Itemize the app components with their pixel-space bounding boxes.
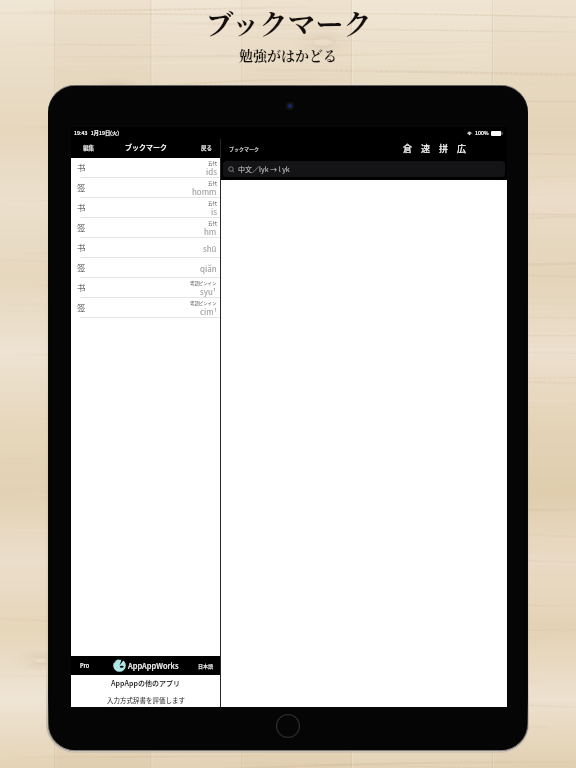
staticText: 书 [77, 241, 86, 253]
staticText: 速 [421, 142, 431, 155]
staticText: ブックマーク [125, 142, 167, 152]
button[interactable]: 戻る [194, 140, 220, 156]
button[interactable]: Pro [71, 658, 99, 674]
staticText: 粤語ピンイン [190, 280, 217, 286]
button[interactable]: 书 [71, 198, 220, 218]
staticText: 粤語ピンイン [190, 300, 217, 306]
button[interactable]: AppAppの他のアプリ [71, 675, 220, 691]
button[interactable]: 签 [71, 258, 220, 278]
staticText: 勉強がはかどる [239, 45, 337, 65]
staticText: shū [203, 243, 217, 255]
staticText: 书 [77, 201, 86, 213]
button[interactable]: 签 [71, 298, 220, 318]
staticText: 拼 [439, 142, 449, 155]
staticText: qiǎn [200, 263, 217, 275]
staticText: 倉 [403, 142, 413, 155]
staticText: cim¹ [200, 306, 217, 318]
button[interactable]: 倉 [399, 139, 417, 158]
button[interactable]: 书 [71, 158, 220, 178]
staticText: 広 [457, 142, 467, 155]
button[interactable]: 书 [71, 278, 220, 298]
button[interactable]: 签 [71, 218, 220, 238]
staticText: 五代 [208, 180, 217, 186]
staticText: 签 [77, 221, 86, 233]
staticText: 书 [77, 281, 86, 293]
staticText: 19:43 1月19日(火) [74, 129, 120, 137]
staticText: AppAppの他のアプリ [111, 678, 181, 688]
staticText: 五代 [208, 160, 217, 166]
staticText: 戻る [201, 144, 213, 152]
staticText: hm [204, 226, 217, 238]
button[interactable]: 签 [71, 178, 220, 198]
other: AppAppWorks logo [113, 659, 126, 672]
staticText: 五代 [208, 220, 217, 226]
button[interactable]: 日本語 [192, 658, 220, 673]
staticText: 签 [77, 301, 86, 313]
staticText: AppAppWorks [128, 660, 179, 671]
staticText: Pro [80, 662, 90, 670]
staticText: 100% [475, 129, 489, 137]
staticText: 編集 [83, 144, 95, 152]
staticText: 签 [77, 181, 86, 193]
button[interactable]: 书 [71, 238, 220, 258]
staticText: ブックマーク [205, 3, 372, 43]
staticText: 签 [77, 261, 86, 273]
staticText: 中文／lyk → l yk [238, 164, 290, 174]
button[interactable]: 広 [453, 139, 471, 158]
button[interactable]: 速 [417, 139, 435, 158]
button[interactable]: 中文／lyk → l yk [223, 161, 505, 177]
staticText: 日本語 [198, 662, 214, 669]
staticText: 五代 [208, 200, 217, 206]
button[interactable]: 拼 [435, 139, 453, 158]
staticText: homm [192, 186, 217, 198]
button[interactable]: AppAppWorks logo [113, 657, 179, 674]
staticText: ブックマーク [229, 145, 260, 152]
staticText: syu¹ [200, 286, 217, 298]
button[interactable]: 入力方式辞書を評価します [71, 691, 220, 707]
staticText: ids [206, 166, 217, 178]
staticText: is [211, 206, 217, 218]
staticText: 书 [77, 161, 86, 173]
staticText: 入力方式辞書を評価します [107, 695, 185, 704]
button[interactable]: 編集 [71, 140, 107, 156]
